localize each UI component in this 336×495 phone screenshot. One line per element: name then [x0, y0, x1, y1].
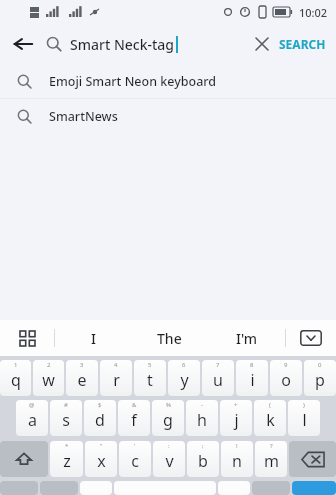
staticText: 4	[114, 361, 118, 369]
button[interactable]: !	[221, 441, 253, 477]
button[interactable]: "	[85, 441, 117, 477]
button[interactable]: I	[55, 320, 131, 356]
staticText: h	[197, 409, 207, 431]
staticText: s	[62, 409, 70, 431]
button[interactable]: Symbols	[0, 481, 38, 495]
staticText: b	[198, 450, 208, 472]
staticText: m	[264, 450, 279, 472]
staticText: 5	[148, 361, 152, 369]
button[interactable]: '	[119, 441, 151, 477]
button[interactable]: 3	[66, 360, 98, 396]
button[interactable]: Clear	[245, 24, 279, 64]
staticText: o	[281, 369, 291, 391]
button[interactable]: :	[153, 441, 185, 477]
button[interactable]: 9	[270, 360, 302, 396]
button[interactable]: *	[50, 441, 83, 477]
staticText: !	[236, 442, 238, 450]
staticText: w	[42, 369, 55, 391]
button[interactable]: SEARCH	[279, 24, 326, 64]
staticText: +	[234, 401, 238, 409]
button[interactable]: 0	[304, 360, 336, 396]
staticText: k	[266, 409, 275, 431]
staticText: SEARCH	[279, 36, 326, 52]
staticText: j	[234, 409, 239, 431]
button[interactable]: Emoji Smart Neon keyboard	[0, 64, 336, 98]
button[interactable]: 8	[236, 360, 268, 396]
button[interactable]: Language	[252, 481, 290, 495]
staticText: z	[63, 450, 71, 472]
staticText: '	[134, 442, 136, 450]
staticText: 9	[284, 361, 288, 369]
staticText: I	[91, 329, 96, 348]
staticText: d	[95, 409, 105, 431]
staticText: 6	[182, 361, 186, 369]
button[interactable]: 7	[202, 360, 234, 396]
staticText: %	[166, 401, 171, 409]
button[interactable]: @	[16, 400, 48, 436]
button[interactable]: Space	[114, 481, 216, 495]
staticText: 2	[47, 361, 51, 369]
button[interactable]: +	[220, 400, 252, 436]
button[interactable]: Back	[0, 24, 46, 64]
button[interactable]: Emoji	[40, 481, 78, 495]
staticText: "	[100, 442, 103, 450]
staticText: r	[113, 369, 120, 391]
staticText: q	[11, 369, 21, 391]
staticText: p	[315, 369, 325, 391]
button[interactable]: Enter	[292, 481, 336, 495]
staticText: c	[131, 450, 139, 472]
staticText: n	[232, 450, 242, 472]
staticText: $	[98, 401, 102, 409]
staticText: 8	[250, 361, 254, 369]
staticText: *	[65, 442, 69, 450]
staticText: a	[28, 409, 37, 431]
staticText: )	[303, 401, 305, 409]
staticText: SmartNews	[49, 108, 118, 125]
button[interactable]: 4	[100, 360, 132, 396]
button[interactable]: 2	[33, 360, 64, 396]
button[interactable]: 5	[134, 360, 166, 396]
staticText: t	[147, 369, 153, 391]
button[interactable]: Comma	[80, 481, 112, 495]
button[interactable]: %	[152, 400, 184, 436]
staticText: 3	[80, 361, 84, 369]
staticText: f	[131, 409, 137, 431]
button[interactable]: Smart Neck-tag	[46, 24, 245, 64]
staticText: I'm	[236, 329, 258, 348]
button[interactable]: Hide keyboard	[286, 320, 336, 356]
staticText: &	[132, 401, 137, 409]
staticText: x	[97, 450, 106, 472]
button[interactable]: -	[186, 400, 218, 436]
button[interactable]: (	[254, 400, 286, 436]
button[interactable]: &	[118, 400, 150, 436]
button[interactable]: Shift	[0, 441, 48, 477]
staticText: u	[213, 369, 223, 391]
staticText: e	[77, 369, 87, 391]
button[interactable]: $	[84, 400, 116, 436]
button[interactable]: SmartNews	[0, 99, 336, 133]
staticText: 0	[318, 361, 322, 369]
staticText: ?	[270, 442, 273, 450]
button[interactable]: Period	[218, 481, 250, 495]
button[interactable]: ?	[255, 441, 287, 477]
staticText: 10:02	[299, 5, 328, 20]
button[interactable]: I'm	[208, 320, 285, 356]
staticText: v	[165, 450, 174, 472]
staticText: 7	[216, 361, 220, 369]
staticText: y	[180, 369, 189, 391]
staticText: (	[269, 401, 271, 409]
staticText: @	[29, 401, 35, 409]
button[interactable]: ;	[187, 441, 219, 477]
button[interactable]: Backspace	[289, 441, 336, 477]
button[interactable]: 6	[168, 360, 200, 396]
staticText: i	[250, 369, 255, 391]
button[interactable]: Keyboard menu	[0, 320, 54, 356]
button[interactable]: #	[50, 400, 82, 436]
button[interactable]: The	[131, 320, 208, 356]
staticText: :	[168, 442, 170, 450]
button[interactable]: 1	[0, 360, 31, 396]
staticText: Smart Neck-tag	[70, 35, 175, 54]
staticText: g	[163, 409, 173, 431]
staticText: l	[302, 409, 307, 431]
button[interactable]: )	[288, 400, 320, 436]
